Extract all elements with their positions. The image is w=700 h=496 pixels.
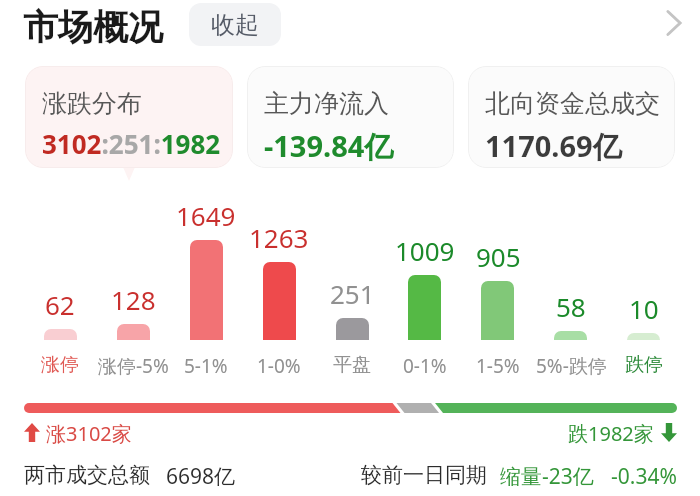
staticText: 市场概况 xyxy=(23,5,163,49)
staticText: 62 xyxy=(45,287,75,322)
staticText: 128 xyxy=(111,282,156,317)
staticText: 1170.69亿 xyxy=(485,126,622,166)
button[interactable] xyxy=(243,196,315,376)
button[interactable]: 涨跌分布 xyxy=(25,66,233,168)
staticText: -139.84亿 xyxy=(264,126,394,166)
staticText: 北向资金总成交 xyxy=(485,88,660,119)
staticText: 5-1% xyxy=(184,353,228,379)
button[interactable] xyxy=(389,196,461,376)
button[interactable] xyxy=(462,196,534,376)
staticText: 跌1982家 xyxy=(568,420,654,444)
staticText: 1-0% xyxy=(257,353,301,379)
button[interactable] xyxy=(608,196,680,376)
button[interactable]: 涨3102家 xyxy=(24,420,132,444)
staticText: 1263 xyxy=(249,220,309,255)
button[interactable] xyxy=(97,196,169,376)
button[interactable]: 北向资金总成交 xyxy=(468,66,675,168)
button[interactable] xyxy=(535,196,607,376)
staticText: 涨停-5% xyxy=(98,353,169,379)
staticText: 缩量-23亿 xyxy=(500,462,594,486)
staticText: 收起 xyxy=(211,10,259,40)
staticText: 0-1% xyxy=(403,353,447,379)
button[interactable] xyxy=(316,196,388,376)
staticText: 251 xyxy=(330,276,375,311)
staticText: 1009 xyxy=(395,233,455,268)
button[interactable]: 收起 xyxy=(189,3,281,46)
staticText: 905 xyxy=(476,239,521,274)
button[interactable]: 市场概况 xyxy=(23,5,163,49)
staticText: 跌停 xyxy=(625,353,663,377)
staticText: 5%-跌停 xyxy=(536,353,607,379)
staticText: 涨3102家 xyxy=(46,420,132,444)
staticText: 平盘 xyxy=(333,353,371,377)
button[interactable] xyxy=(170,196,242,376)
button[interactable] xyxy=(24,196,96,376)
button[interactable]: 跌1982家 xyxy=(568,420,677,444)
button[interactable]: 主力净流入 xyxy=(247,66,454,168)
staticText: 两市成交总额 xyxy=(24,462,150,486)
staticText: 1649 xyxy=(176,198,236,233)
staticText: 主力净流入 xyxy=(264,88,389,119)
staticText: 10 xyxy=(629,291,659,326)
staticText: 3102:251:1982 xyxy=(42,126,221,161)
staticText: 涨停 xyxy=(41,353,79,377)
staticText: 较前一日同期 xyxy=(361,462,487,486)
staticText: 1-5% xyxy=(476,353,520,379)
button[interactable] xyxy=(24,403,677,413)
button[interactable]: 展开详情 xyxy=(652,1,696,45)
staticText: 6698亿 xyxy=(166,462,236,486)
staticText: 涨跌分布 xyxy=(42,88,142,119)
staticText: 58 xyxy=(556,289,586,324)
staticText: -0.34% xyxy=(611,462,677,486)
